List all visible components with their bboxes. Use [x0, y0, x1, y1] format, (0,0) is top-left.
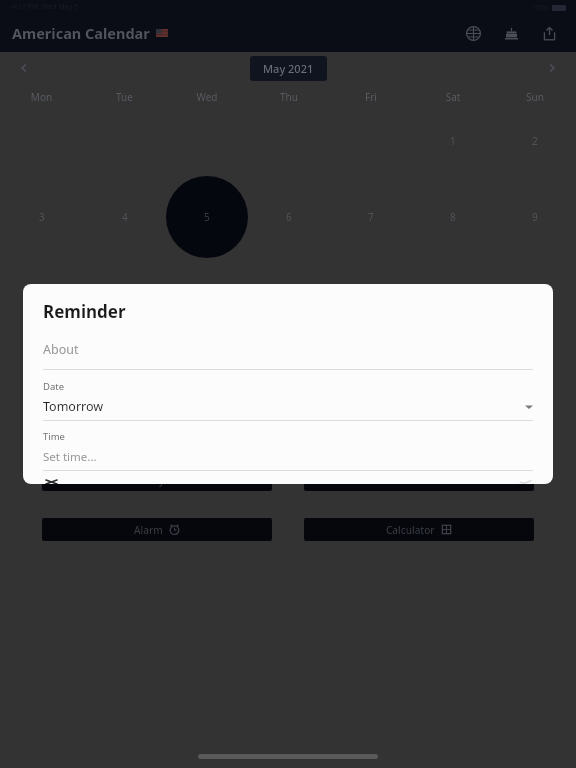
staticText: Sat	[412, 90, 494, 104]
staticText: Sun	[494, 90, 576, 104]
button[interactable]: Reminder	[304, 468, 534, 491]
button[interactable]: Next month	[540, 56, 564, 80]
staticText: 1	[450, 134, 456, 148]
button[interactable]: Language	[460, 20, 486, 46]
staticText: 7	[368, 210, 374, 224]
staticText: Reminder	[43, 300, 126, 323]
staticText: 100%	[532, 3, 549, 12]
button[interactable]: Cancel	[37, 480, 65, 484]
button[interactable]: Time	[43, 430, 533, 471]
button[interactable]: Date	[43, 380, 533, 421]
staticText: Wed	[166, 90, 248, 104]
button[interactable]: Holidays	[42, 468, 272, 491]
staticText: 2	[532, 134, 538, 148]
staticText: About	[43, 341, 79, 358]
staticText: Fri	[330, 90, 412, 104]
staticText: Alarm	[134, 523, 163, 537]
staticText: 5	[204, 210, 210, 224]
staticText: Mon	[0, 90, 83, 104]
staticText: Tomorrow	[43, 398, 525, 415]
button[interactable]: 5	[166, 176, 248, 258]
staticText: Holidays	[128, 473, 170, 487]
staticText: 8	[450, 210, 456, 224]
staticText: Time	[43, 430, 65, 443]
button[interactable]: Calculator	[304, 518, 534, 541]
button[interactable]: Share	[536, 20, 562, 46]
button[interactable]: Previous month	[12, 56, 36, 80]
staticText: Reminder	[387, 473, 434, 487]
button[interactable]: About	[43, 341, 533, 370]
staticText: 9	[532, 210, 538, 224]
staticText: Thu	[248, 90, 330, 104]
staticText: Calculator	[386, 523, 435, 537]
staticText: 3	[39, 210, 45, 224]
staticText: 4:12 PM Wed May 5	[12, 2, 79, 12]
staticText: 4	[122, 210, 128, 224]
button[interactable]: May 2021	[250, 56, 327, 81]
staticText: Set time...	[43, 449, 97, 465]
button[interactable]: Birthdays	[498, 20, 524, 46]
staticText: 6	[286, 210, 292, 224]
button[interactable]: Alarm	[42, 518, 272, 541]
staticText: Date	[43, 380, 65, 393]
staticText: May 2021	[263, 61, 314, 76]
staticText: Tue	[83, 90, 166, 104]
staticText: American Calendar	[12, 23, 150, 43]
button[interactable]: Save	[511, 480, 539, 484]
